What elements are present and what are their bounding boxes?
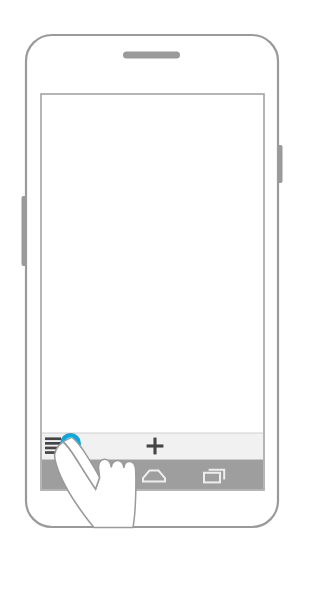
button[interactable]: Open navigation menu — [42, 434, 74, 460]
button[interactable]: Add — [139, 434, 172, 460]
button[interactable]: Recent apps — [197, 462, 232, 489]
button[interactable]: Home — [137, 462, 172, 489]
